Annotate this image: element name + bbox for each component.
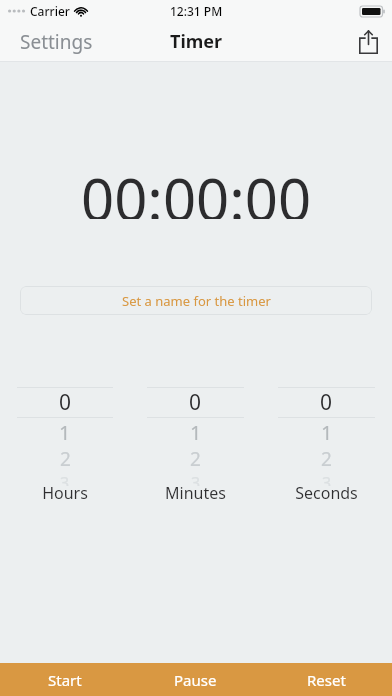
staticText: 1: [321, 419, 333, 446]
staticText: 3: [191, 472, 201, 486]
button[interactable]: Pause: [130, 663, 261, 696]
staticText: Carrier: [30, 3, 70, 19]
staticText: Pause: [174, 670, 217, 690]
staticText: Timer: [170, 29, 223, 54]
staticText: 2: [321, 446, 332, 472]
staticText: 1: [190, 419, 202, 446]
staticText: 0: [59, 388, 72, 417]
button[interactable]: Share: [345, 22, 392, 61]
staticText: Settings: [20, 29, 93, 55]
staticText: 3: [60, 472, 70, 486]
staticText: Reset: [307, 670, 346, 690]
button[interactable]: 0: [130, 387, 261, 512]
button[interactable]: Settings: [0, 22, 113, 61]
staticText: 0: [189, 388, 202, 417]
staticText: Hours: [42, 482, 88, 504]
button[interactable]: Reset: [261, 663, 392, 696]
staticText: 12:31 PM: [170, 3, 223, 19]
staticText: 1: [59, 419, 71, 446]
button[interactable]: 0: [0, 387, 130, 512]
button[interactable]: Start: [0, 663, 130, 696]
staticText: 2: [60, 446, 71, 472]
staticText: Set a name for the timer: [122, 292, 271, 310]
staticText: Start: [48, 670, 82, 690]
button[interactable]: Set a name for the timer: [20, 286, 372, 315]
staticText: 3: [322, 472, 332, 486]
staticText: 00:00:00: [81, 159, 312, 219]
button[interactable]: 0: [261, 387, 392, 512]
staticText: Seconds: [295, 482, 358, 504]
staticText: 2: [190, 446, 201, 472]
staticText: 0: [320, 388, 333, 417]
staticText: Minutes: [165, 482, 226, 504]
